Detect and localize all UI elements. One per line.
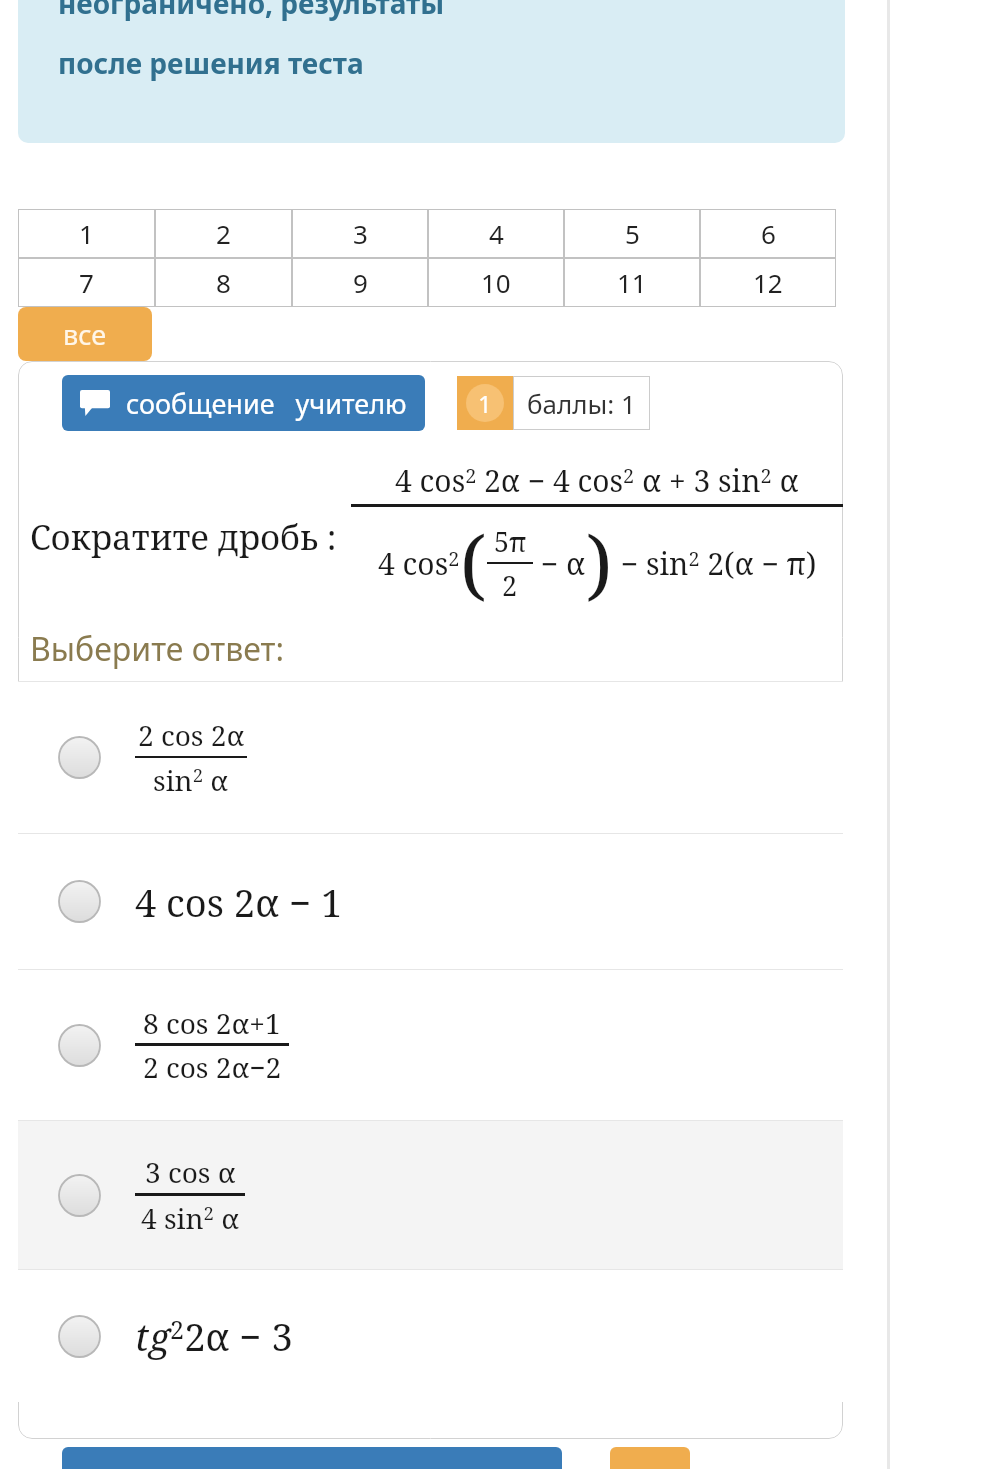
button[interactable]: 5 [564, 209, 700, 258]
staticText: 2 cos 2α [138, 716, 245, 754]
staticText: 6 [761, 216, 776, 251]
staticText: 2 cos 2α−2 [143, 1048, 282, 1086]
staticText: все [63, 316, 107, 353]
staticText: 4 cos2 [378, 543, 460, 584]
staticText: 3 [353, 216, 368, 251]
staticText: Сократите дробь : [30, 514, 337, 560]
staticText: 11 [617, 265, 647, 300]
button[interactable]: 3 cos α [18, 1121, 843, 1269]
staticText: 5 [625, 216, 640, 251]
staticText: после решения теста [58, 44, 364, 82]
button[interactable]: 4 [428, 209, 564, 258]
button[interactable]: 2 [155, 209, 292, 258]
staticText: сообщение учителю [126, 385, 407, 422]
staticText: 9 [353, 265, 368, 300]
staticText: − sin2 2(α − π) [613, 543, 817, 584]
button[interactable]: 6 [700, 209, 836, 258]
button[interactable]: 4 cos 2α − 1 [18, 834, 843, 969]
button[interactable]: 9 [292, 258, 428, 307]
staticText: 8 [216, 265, 231, 300]
button[interactable]: 12 [700, 258, 836, 307]
button[interactable]: tg22α − 3 [18, 1270, 843, 1402]
button[interactable]: 3 [292, 209, 428, 258]
staticText: 2 [216, 216, 231, 251]
staticText: 12 [753, 265, 783, 300]
staticText: 4 sin2 α [141, 1199, 240, 1237]
staticText: неограничено, результаты [58, 0, 445, 22]
staticText: tg22α − 3 [135, 1310, 293, 1362]
button[interactable]: 8 cos 2α+1 [18, 970, 843, 1120]
button[interactable]: 1 [457, 376, 650, 430]
button[interactable]: Ответить [62, 1447, 562, 1469]
staticText: 1 [478, 387, 492, 420]
button[interactable]: сообщение учителю [62, 375, 425, 431]
staticText: ( [460, 511, 487, 615]
button[interactable]: 1 [18, 209, 155, 258]
staticText: Выберите ответ: [30, 627, 285, 671]
staticText: 2 [502, 567, 518, 604]
button[interactable]: Пропустить [610, 1447, 690, 1469]
staticText: 7 [79, 265, 94, 300]
staticText: 1 [79, 216, 94, 251]
staticText: 4 cos2 2α − 4 cos2 α + 3 sin2 α [395, 460, 799, 501]
button[interactable]: 8 [155, 258, 292, 307]
staticText: ) [586, 511, 613, 615]
staticText: − α [533, 543, 586, 584]
staticText: sin2 α [153, 761, 229, 799]
button[interactable]: 11 [564, 258, 700, 307]
staticText: баллы: 1 [527, 386, 636, 421]
button[interactable]: 2 cos 2α [18, 682, 843, 833]
staticText: 4 cos 2α − 1 [135, 876, 343, 928]
staticText: 5π [494, 523, 527, 560]
staticText: 8 cos 2α+1 [143, 1004, 281, 1042]
staticText: 10 [481, 265, 511, 300]
button[interactable]: все [18, 307, 152, 361]
button[interactable]: 10 [428, 258, 564, 307]
staticText: 3 cos α [145, 1153, 236, 1191]
staticText: 4 [489, 216, 504, 251]
button[interactable]: 7 [18, 258, 155, 307]
